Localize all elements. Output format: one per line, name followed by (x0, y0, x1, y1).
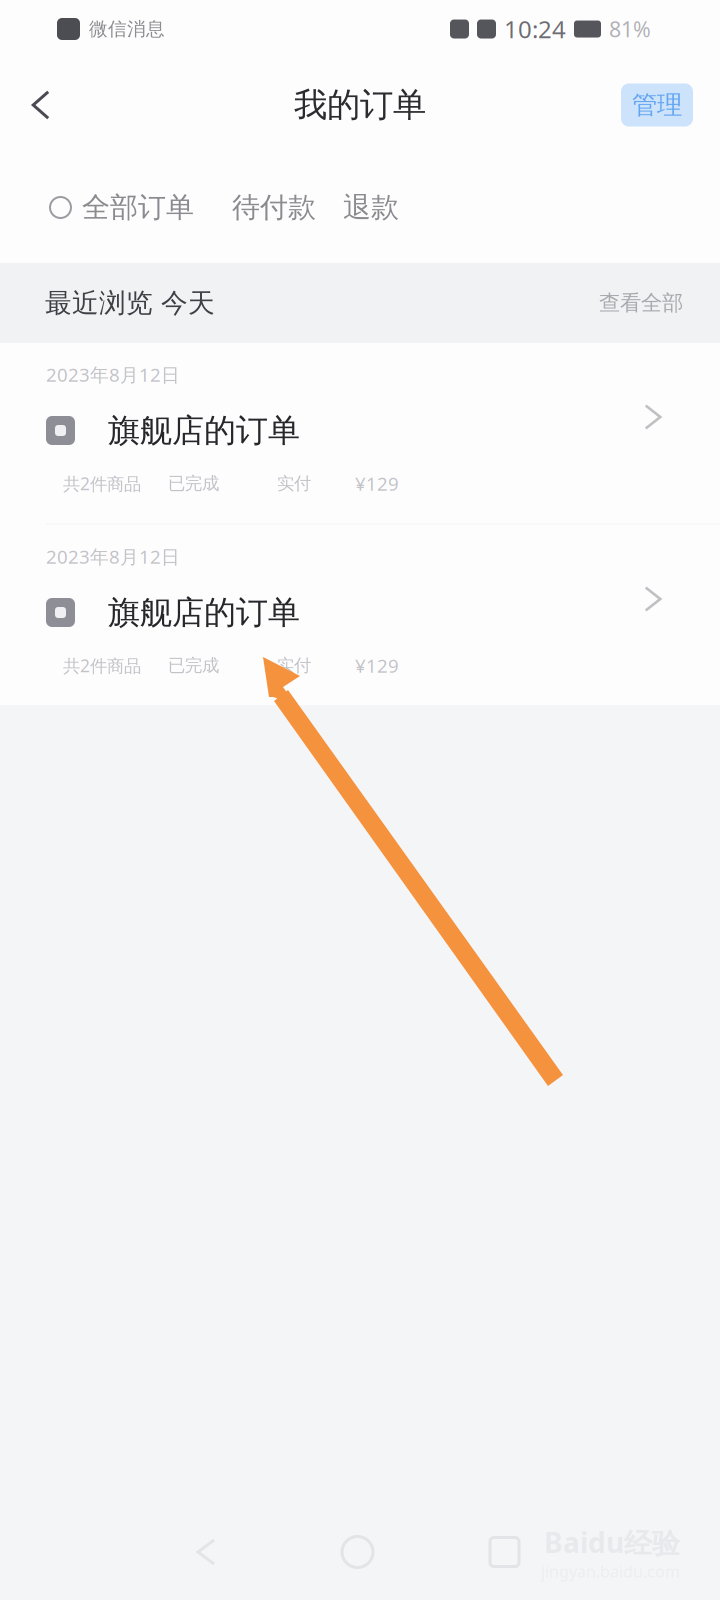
staticText: 已完成 (168, 473, 219, 494)
staticText: ¥129 (355, 471, 399, 496)
staticText: 旗舰店的订单 (108, 593, 300, 632)
button[interactable]: 查看全部 (599, 290, 683, 316)
staticText: 81% (609, 15, 651, 43)
button[interactable]: 返回 (14, 72, 68, 138)
staticText: 10:24 (504, 13, 566, 45)
button[interactable]: 2023年8月12日 (0, 524, 720, 705)
staticText: 2023年8月12日 (46, 544, 180, 569)
button[interactable]: 最近任务 (474, 1513, 535, 1590)
staticText: 2023年8月12日 (46, 362, 180, 387)
staticText: Baidu经验 (544, 1523, 680, 1561)
staticText: 退款 (343, 190, 399, 225)
button[interactable]: 主页 (326, 1512, 389, 1591)
button[interactable]: 待付款 (232, 190, 316, 225)
staticText: 已完成 (168, 655, 219, 676)
staticText: 待付款 (232, 190, 316, 225)
button[interactable]: 退款 (343, 190, 399, 225)
staticText: 我的订单 (294, 84, 426, 125)
staticText: ¥129 (355, 653, 399, 678)
staticText: 实付 (277, 473, 311, 494)
staticText: 微信消息 (89, 17, 165, 40)
button[interactable]: 2023年8月12日 (0, 342, 720, 523)
staticText: 旗舰店的订单 (108, 411, 300, 450)
staticText: 共2件商品 (63, 472, 141, 495)
button[interactable]: 全部订单 (50, 190, 194, 225)
staticText: 共2件商品 (63, 654, 141, 677)
staticText: 全部订单 (82, 190, 194, 225)
staticText: 实付 (277, 655, 311, 676)
button[interactable]: 管理 (621, 83, 693, 126)
staticText: 最近浏览 今天 (45, 287, 215, 319)
staticText: 查看全部 (599, 290, 683, 316)
staticText: 管理 (632, 89, 682, 120)
